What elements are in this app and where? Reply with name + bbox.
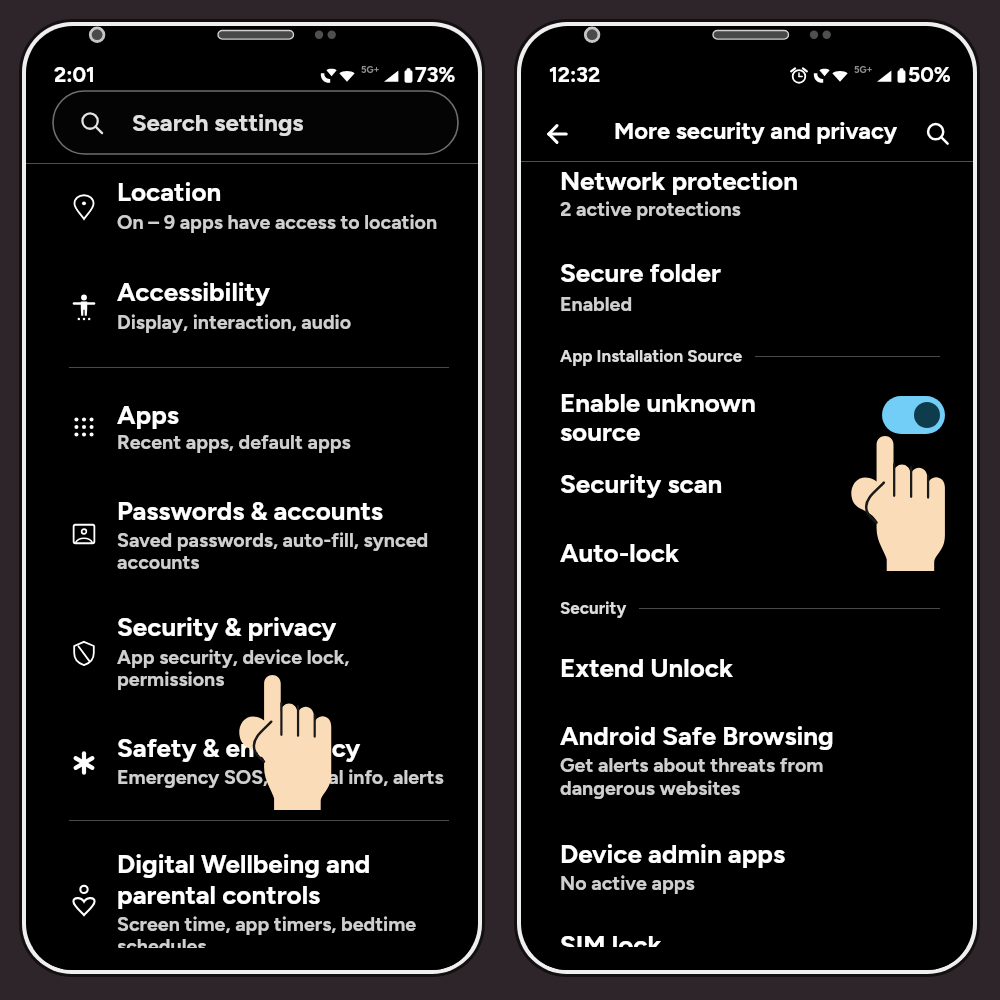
button[interactable]: Location [117, 176, 222, 207]
button[interactable]: icon5 [70, 639, 98, 667]
button[interactable]: Digital Wellbeing and [117, 848, 371, 879]
button[interactable]: Search [915, 111, 959, 155]
staticText: 2 active protections [560, 197, 741, 221]
staticText: On – 9 apps have access to location [117, 210, 438, 234]
button[interactable]: icon6 [70, 749, 98, 777]
button[interactable]: Enable unknown [560, 387, 756, 418]
staticText: 50% [908, 62, 951, 87]
staticText: accounts [117, 550, 200, 574]
button[interactable]: Back [535, 112, 579, 156]
button[interactable]: Security scan [560, 468, 723, 499]
staticText: 5G+ [361, 64, 380, 75]
button[interactable]: icon7 [68, 883, 100, 915]
button[interactable]: Security & privacy [117, 611, 337, 642]
staticText: 73% [415, 62, 456, 87]
button[interactable]: Apps [117, 399, 179, 430]
button[interactable]: icon2 [70, 293, 98, 321]
button[interactable]: source [560, 416, 641, 447]
staticText: Search settings [132, 108, 304, 137]
button[interactable]: Device admin apps [560, 838, 786, 869]
button[interactable]: icon4 [70, 520, 98, 548]
button[interactable]: Secure folder [560, 257, 721, 288]
staticText: 2:01 [54, 62, 95, 87]
button[interactable]: Search settings [53, 91, 458, 154]
staticText: Security [560, 598, 627, 618]
button[interactable]: SIM lock [560, 929, 662, 960]
button[interactable]: Safety & emergency [117, 732, 361, 763]
button[interactable]: icon1 [70, 193, 98, 221]
staticText: Recent apps, default apps [117, 430, 351, 454]
staticText: schedules [117, 934, 207, 958]
button[interactable]: Android Safe Browsing [560, 720, 834, 751]
staticText: App security, device lock, [117, 645, 350, 669]
button[interactable]: Passwords & accounts [117, 495, 383, 526]
button[interactable]: Network protection [560, 165, 798, 196]
button[interactable]: Accessibility [117, 276, 271, 307]
button[interactable]: More security and privacy [614, 116, 898, 144]
staticText: Enabled [560, 292, 633, 316]
staticText: Screen time, app timers, bedtime [117, 912, 417, 936]
button[interactable]: Auto-lock [560, 537, 679, 568]
staticText: Get alerts about threats from [560, 753, 824, 777]
staticText: Saved passwords, auto-fill, synced [117, 528, 429, 552]
staticText: No active apps [560, 871, 695, 895]
button[interactable]: icon3 [70, 413, 98, 441]
staticText: Emergency SOS, medical info, alerts [117, 765, 444, 789]
staticText: App Installation Source [560, 346, 743, 366]
button[interactable]: parental controls [117, 879, 321, 910]
staticText: dangerous websites [560, 776, 741, 800]
staticText: Display, interaction, audio [117, 310, 352, 334]
staticText: 12:32 [549, 62, 601, 87]
staticText: 5G+ [854, 64, 873, 75]
staticText: permissions [117, 667, 225, 691]
button[interactable]: Extend Unlock [560, 652, 734, 683]
button[interactable]: Enable unknown source [882, 396, 945, 434]
